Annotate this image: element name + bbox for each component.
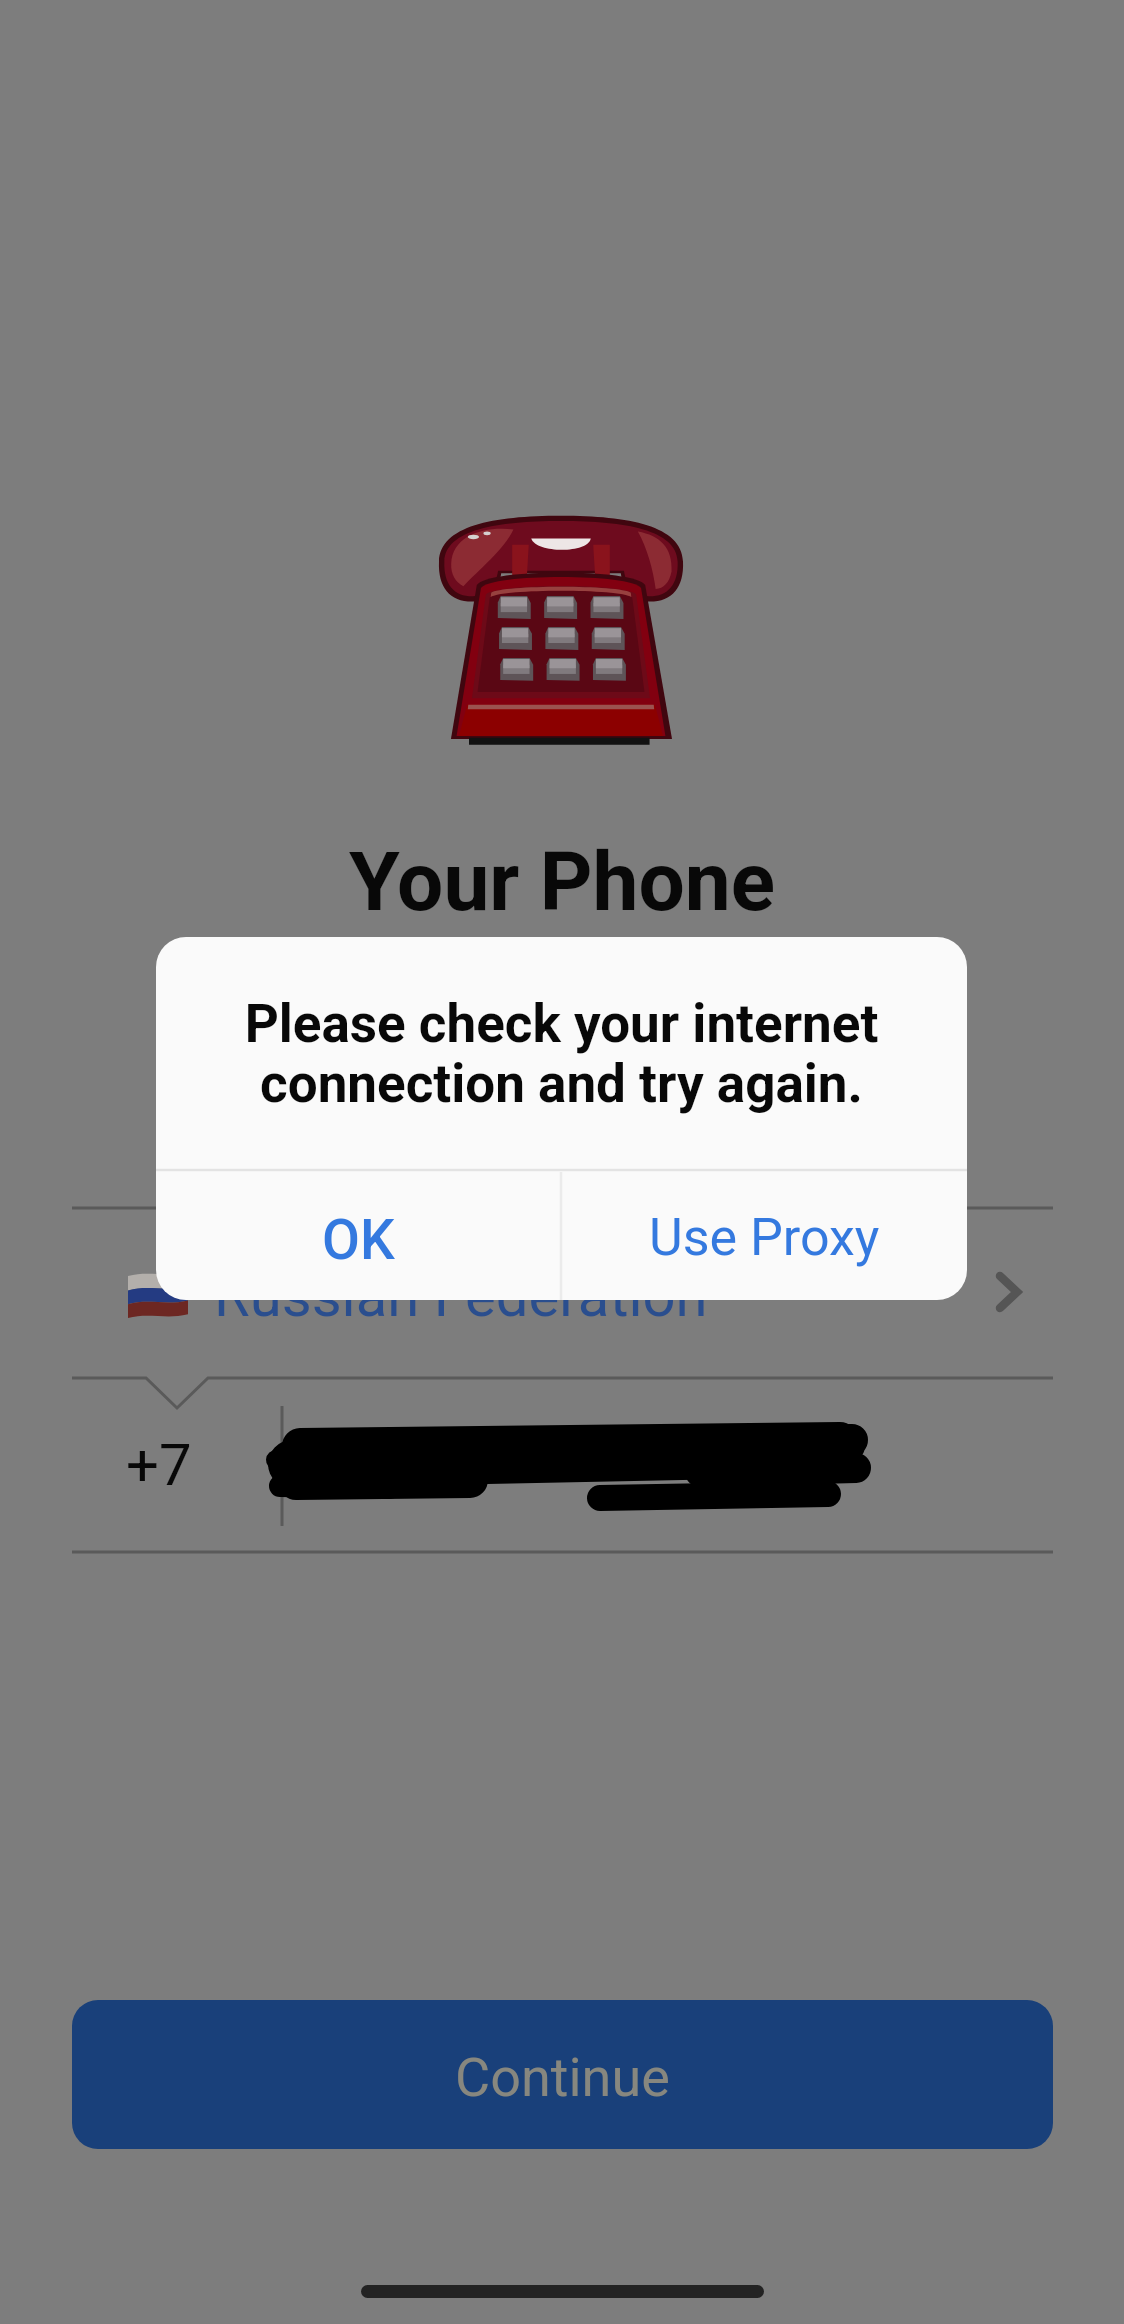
button[interactable]: Use Proxy [561,1175,967,1300]
staticText: Please check your internet connection an… [196,993,927,1115]
staticText: Your Phone [0,834,1124,930]
button[interactable]: Russian Federation [0,1209,1124,1378]
button[interactable]: Phone number [0,1379,1124,1552]
button[interactable]: Continue [72,2000,1053,2149]
staticText: Continue [455,2046,670,2109]
staticText: Use Proxy [649,1207,880,1268]
button[interactable]: OK [156,1175,561,1300]
staticText: Russian Federation [214,1262,708,1330]
staticText: OK [322,1208,395,1272]
staticText: +7 [126,1431,192,1499]
